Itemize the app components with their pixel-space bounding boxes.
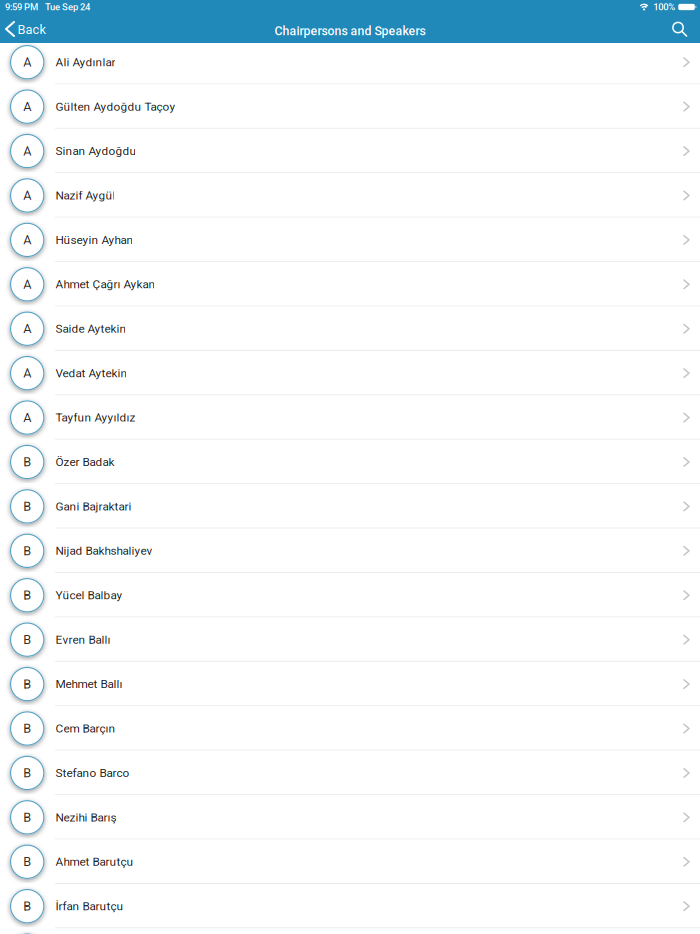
staticText: A	[23, 277, 31, 292]
staticText: Mehmet Ballı	[55, 677, 122, 691]
staticText: Cem Barçın	[55, 722, 115, 735]
staticText: A	[23, 321, 31, 336]
button[interactable]: B	[0, 928, 700, 934]
staticText: B	[23, 810, 31, 825]
staticText: A	[23, 410, 31, 425]
staticText: 9:59 PM	[5, 1, 38, 13]
button[interactable]: B	[0, 484, 700, 529]
staticText: Gani Bajraktari	[55, 499, 131, 513]
staticText: Ahmet Barutçu	[55, 855, 133, 869]
button[interactable]: A	[0, 218, 700, 262]
staticText: Chairpersons and Speakers	[274, 24, 425, 38]
button[interactable]: B	[0, 840, 700, 884]
staticText: Yücel Balbay	[55, 588, 122, 602]
staticText: Vedat Aytekin	[55, 366, 127, 380]
staticText: Gülten Aydoğdu Taçoy	[55, 100, 175, 113]
staticText: A	[23, 188, 31, 203]
button[interactable]: B	[0, 884, 700, 928]
staticText: A	[23, 366, 31, 380]
button[interactable]: B	[0, 573, 700, 617]
staticText: B	[23, 632, 31, 647]
staticText: A	[23, 99, 31, 114]
staticText: Back	[17, 22, 45, 37]
staticText: A	[23, 232, 31, 247]
staticText: B	[23, 721, 31, 736]
staticText: Saide Aytekin	[55, 322, 126, 336]
staticText: Tayfun Ayyıldız	[55, 411, 135, 424]
button[interactable]: Search	[662, 14, 700, 43]
staticText: B	[23, 899, 31, 914]
staticText: İrfan Barutçu	[55, 899, 123, 913]
staticText: Nazif Aygül	[55, 189, 115, 202]
staticText: B	[23, 455, 31, 469]
button[interactable]: A	[0, 395, 700, 440]
staticText: B	[23, 588, 31, 603]
staticText: B	[23, 677, 31, 691]
staticText: Evren Ballı	[55, 633, 110, 647]
button[interactable]: A	[0, 262, 700, 306]
button[interactable]: B	[0, 751, 700, 795]
button[interactable]: A	[0, 40, 700, 84]
staticText: Tue Sep 24	[45, 1, 90, 13]
staticText: Nijad Bakhshaliyev	[55, 544, 152, 558]
staticText: Nezihi Barış	[55, 810, 116, 824]
button[interactable]: A	[0, 173, 700, 218]
staticText: Sinan Aydoğdu	[55, 144, 136, 158]
button[interactable]: B	[0, 662, 700, 706]
button[interactable]: B	[0, 617, 700, 662]
staticText: A	[23, 55, 31, 70]
staticText: Ali Aydınlar	[55, 55, 115, 69]
staticText: B	[23, 543, 31, 558]
staticText: B	[23, 854, 31, 869]
staticText: A	[23, 144, 31, 158]
button[interactable]: B	[0, 795, 700, 839]
button[interactable]: B	[0, 706, 700, 751]
button[interactable]: A	[0, 351, 700, 395]
button[interactable]: Back	[0, 14, 53, 43]
button[interactable]: B	[0, 529, 700, 573]
staticText: Hüseyin Ayhan	[55, 233, 133, 247]
staticText: 100%	[653, 1, 675, 13]
button[interactable]: A	[0, 306, 700, 351]
button[interactable]: A	[0, 84, 700, 129]
button[interactable]: B	[0, 440, 700, 484]
staticText: B	[23, 499, 31, 514]
staticText: Ahmet Çağrı Aykan	[55, 277, 155, 291]
staticText: B	[23, 765, 31, 780]
staticText: Stefano Barco	[55, 766, 129, 780]
button[interactable]: A	[0, 129, 700, 173]
staticText: Özer Badak	[55, 455, 114, 469]
